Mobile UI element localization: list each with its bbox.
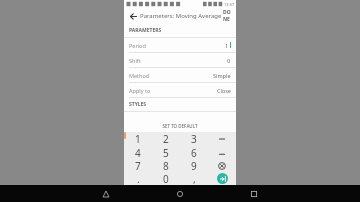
staticText: 7 (135, 159, 141, 172)
button[interactable]: Shift (124, 53, 236, 68)
button[interactable]: Method (124, 68, 236, 83)
button[interactable]: Home (174, 188, 186, 200)
staticText: Period (129, 42, 146, 49)
button[interactable]: 3 (180, 132, 208, 146)
staticText: 2 (163, 132, 169, 146)
button[interactable]: , (180, 172, 208, 185)
button[interactable]: 7 (124, 159, 152, 172)
button[interactable]: 5 (152, 146, 180, 159)
staticText: Shift (129, 57, 141, 64)
button[interactable]: 1 (124, 132, 152, 146)
button[interactable]: Recents (248, 188, 260, 200)
staticText: Close (217, 87, 231, 94)
staticText: . (137, 172, 140, 185)
staticText: 9 (191, 159, 197, 172)
staticText: SET TO DEFAULT (162, 123, 198, 129)
button[interactable]: Back (128, 11, 138, 21)
button[interactable]: Minus (208, 132, 236, 146)
staticText: 13:57 (224, 2, 235, 7)
button[interactable]: 9 (180, 159, 208, 172)
staticText: 0 (163, 172, 169, 185)
staticText: Apply to (129, 87, 151, 94)
button[interactable]: 6 (180, 146, 208, 159)
button[interactable]: 4 (124, 146, 152, 159)
button[interactable]: SET TO DEFAULT (124, 119, 236, 132)
staticText: 6 (191, 146, 197, 159)
staticText: DONE (223, 9, 231, 23)
button[interactable]: Enter (208, 172, 236, 185)
staticText: Method (129, 72, 150, 79)
button[interactable]: Apply to (124, 83, 236, 98)
staticText: 5 (163, 146, 169, 159)
button[interactable]: Dash (208, 146, 236, 159)
staticText: , (193, 172, 196, 185)
staticText: Simple (213, 72, 231, 79)
staticText: Parameters: Moving Average (140, 12, 222, 20)
staticText: PARAMETERS (129, 27, 162, 34)
staticText: 4 (135, 146, 141, 159)
button[interactable]: Backspace (208, 159, 236, 172)
button[interactable]: Back (100, 188, 112, 200)
staticText: 8 (163, 159, 169, 172)
button[interactable]: Period (124, 38, 236, 53)
button[interactable]: 2 (152, 132, 180, 146)
button[interactable]: 0 (152, 172, 180, 185)
staticText: 0 (227, 57, 231, 64)
staticText: 1 (225, 42, 229, 49)
staticText: 1 (135, 132, 141, 146)
staticText: STYLES (129, 101, 147, 108)
staticText: 3 (191, 132, 197, 146)
button[interactable]: DONE (222, 9, 232, 23)
button[interactable]: 8 (152, 159, 180, 172)
button[interactable]: . (124, 172, 152, 185)
